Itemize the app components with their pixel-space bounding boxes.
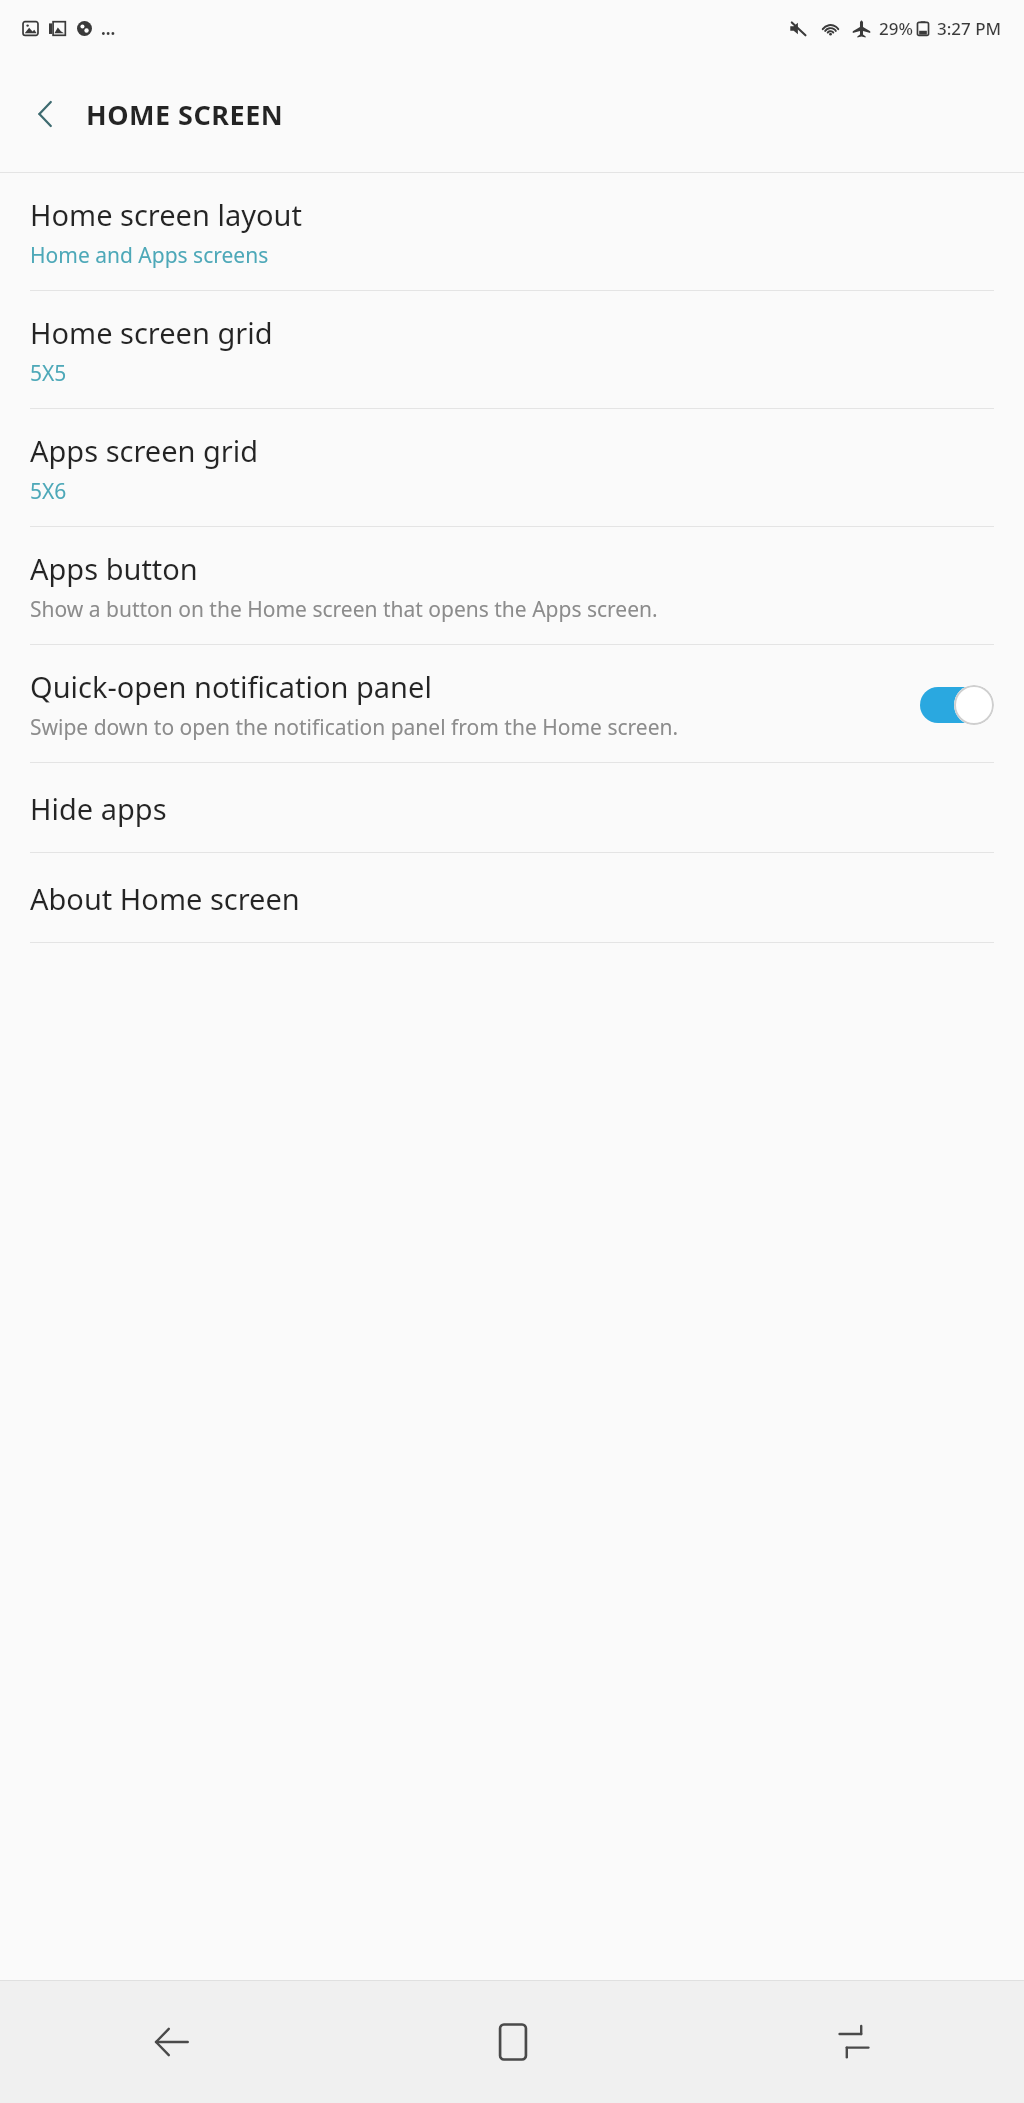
button[interactable]: Apps screen grid: [0, 409, 1024, 526]
button[interactable]: Quick-open notification panel toggle: [920, 684, 998, 726]
staticText: Apps screen grid: [30, 431, 259, 470]
button[interactable]: About Home screen: [0, 853, 1024, 942]
button[interactable]: Apps button: [0, 527, 1024, 644]
staticText: ...: [101, 17, 116, 40]
button[interactable]: Back: [18, 86, 74, 142]
button[interactable]: Home screen layout: [0, 173, 1024, 290]
staticText: Apps button: [30, 549, 198, 588]
staticText: 3:27 PM: [937, 17, 1002, 40]
staticText: 29%: [879, 17, 913, 40]
staticText: Show a button on the Home screen that op…: [30, 595, 658, 624]
staticText: Quick-open notification panel: [30, 667, 432, 706]
staticText: Hide apps: [30, 789, 167, 828]
staticText: Home and Apps screens: [30, 241, 269, 270]
button[interactable]: Home screen grid: [0, 291, 1024, 408]
button[interactable]: Quick-open notification panel: [0, 645, 1024, 762]
staticText: About Home screen: [30, 879, 300, 918]
button[interactable]: Back: [0, 1981, 342, 2103]
staticText: Home screen layout: [30, 195, 302, 234]
button[interactable]: Home: [342, 1981, 683, 2103]
button[interactable]: Hide apps: [0, 763, 1024, 852]
staticText: HOME SCREEN: [86, 96, 284, 133]
staticText: 5X5: [30, 359, 67, 388]
staticText: Swipe down to open the notification pane…: [30, 713, 679, 742]
staticText: Home screen grid: [30, 313, 273, 352]
staticText: 5X6: [30, 477, 67, 506]
button[interactable]: Recents: [683, 1981, 1024, 2103]
